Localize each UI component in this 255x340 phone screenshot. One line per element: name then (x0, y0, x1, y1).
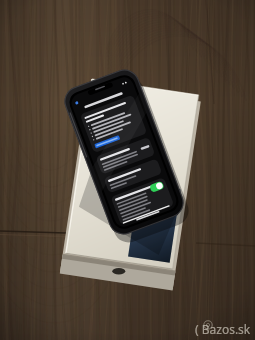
button[interactable]: Bazos.sk watermark (195, 321, 251, 337)
staticText: ( Bazos.sk (195, 321, 251, 337)
